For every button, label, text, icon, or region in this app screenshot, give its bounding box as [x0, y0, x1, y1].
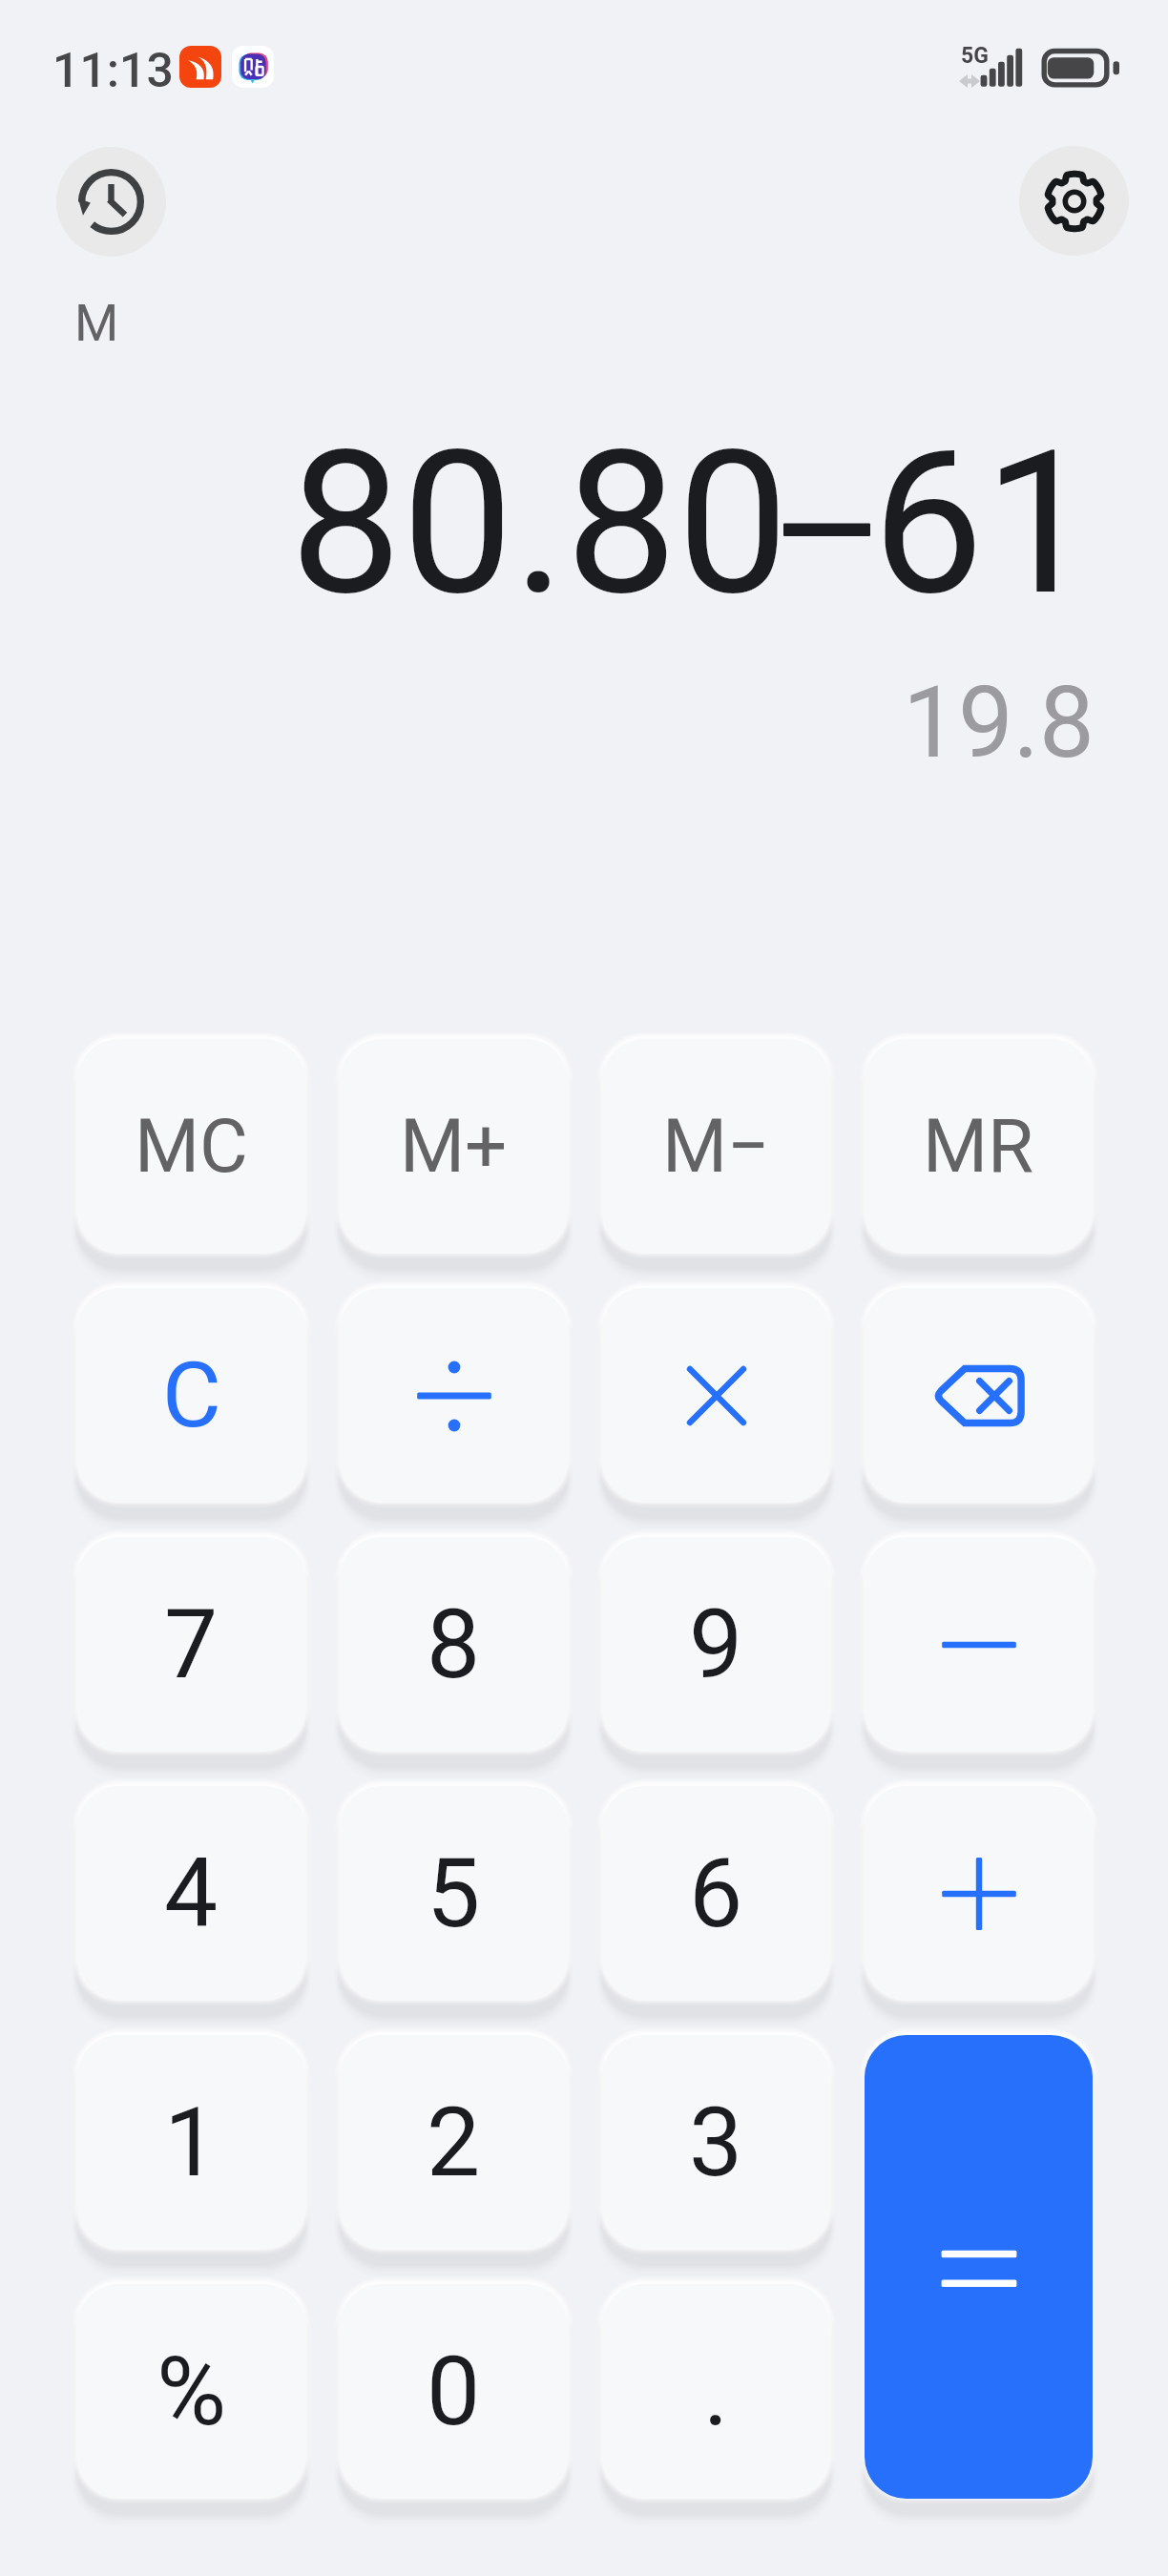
button[interactable]: MR [865, 1039, 1093, 1254]
staticText: MR [923, 1103, 1034, 1190]
staticText: 4 [164, 1838, 219, 1949]
staticText: 3 [689, 2087, 743, 2198]
button[interactable]: M+ [340, 1039, 568, 1254]
button[interactable]: 0 [340, 2284, 568, 2499]
button[interactable]: Plus [865, 1786, 1093, 2001]
staticText: 1 [164, 2087, 219, 2198]
button[interactable]: 9 [602, 1537, 830, 1752]
button[interactable]: Divide [340, 1288, 568, 1503]
button[interactable]: 4 [77, 1786, 305, 2001]
staticText: 19.8 [903, 665, 1095, 780]
button[interactable]: % [77, 2284, 305, 2499]
staticText: 2 [427, 2087, 481, 2198]
button[interactable]: Multiply [602, 1288, 830, 1503]
button[interactable]: MC [77, 1039, 305, 1254]
button[interactable]: Backspace [865, 1288, 1093, 1503]
button[interactable]: 5 [340, 1786, 568, 2001]
button[interactable]: Equals [865, 2035, 1093, 2499]
staticText: . [703, 2336, 729, 2447]
button[interactable]: History [56, 147, 166, 257]
button[interactable]: Settings [1019, 146, 1129, 256]
staticText: 80.80 [290, 407, 789, 640]
button[interactable]: M− [602, 1039, 830, 1254]
button[interactable]: 1 [77, 2035, 305, 2250]
staticText: 7 [164, 1589, 219, 1700]
staticText: 9 [689, 1589, 743, 1700]
button[interactable]: . [602, 2284, 830, 2499]
staticText: 8 [427, 1589, 481, 1700]
button[interactable]: 2 [340, 2035, 568, 2250]
staticText: MC [135, 1103, 248, 1190]
staticText: 5 [427, 1838, 481, 1949]
button[interactable]: 8 [340, 1537, 568, 1752]
staticText: M+ [400, 1103, 508, 1190]
button[interactable]: 7 [77, 1537, 305, 1752]
staticText: 0 [427, 2336, 481, 2447]
button[interactable]: C [77, 1288, 305, 1503]
staticText: 11:13 [52, 43, 174, 99]
button[interactable]: 3 [602, 2035, 830, 2250]
staticText: 6 [689, 1838, 743, 1949]
staticText: M [74, 294, 119, 353]
staticText: 61 [872, 407, 1095, 640]
button[interactable]: Minus [865, 1537, 1093, 1752]
staticText: % [156, 2336, 227, 2447]
staticText: C [162, 1342, 221, 1448]
button[interactable]: 6 [602, 1786, 830, 2001]
staticText: M− [662, 1103, 770, 1190]
staticText: 5G [961, 43, 989, 69]
